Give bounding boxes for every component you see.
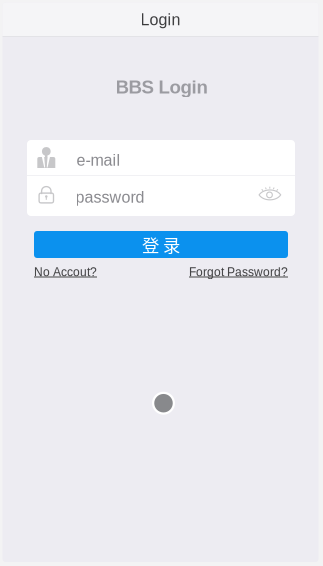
staticText: Login [140,11,180,29]
staticText: BBS Login [115,77,207,97]
staticText: password [75,188,144,206]
staticText: Forgot Password? [189,265,288,279]
button[interactable]: Forgot Password? [189,265,288,279]
staticText: e-mail [76,151,120,169]
staticText: No Accout? [34,265,97,279]
button[interactable]: Show password [248,174,292,212]
staticText: 登 录 [142,232,180,257]
button[interactable]: 登 录 [34,231,288,258]
button[interactable]: No Accout? [34,265,97,279]
